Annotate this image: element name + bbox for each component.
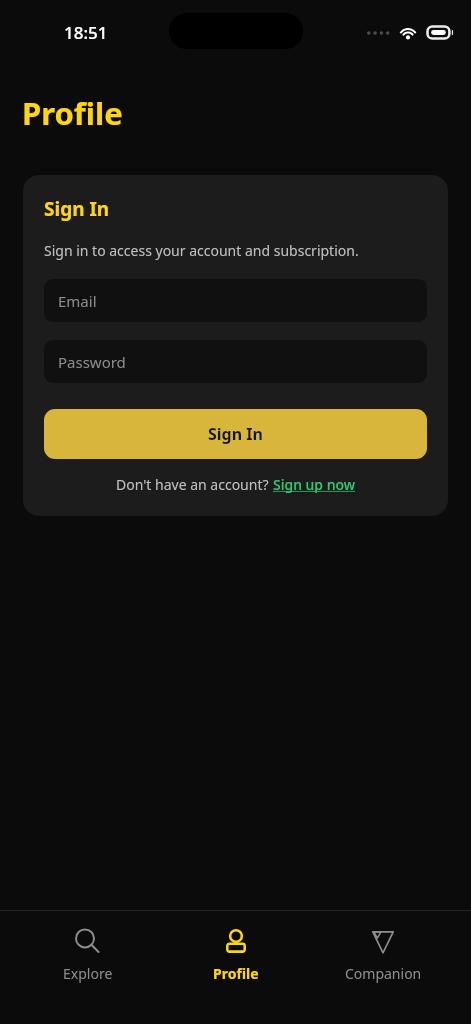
button[interactable]: Sign up now <box>273 475 356 494</box>
staticText: 18:51 <box>64 21 108 44</box>
button[interactable]: Email <box>44 279 427 322</box>
staticText: Sign up now <box>273 475 356 494</box>
staticText: Profile <box>22 92 123 134</box>
staticText: Explore <box>63 964 113 983</box>
staticText: Sign in to access your account and subsc… <box>44 241 359 260</box>
button[interactable]: Companion <box>323 911 443 1024</box>
staticText: Password <box>58 352 126 372</box>
button[interactable]: Sign In <box>44 409 427 459</box>
button[interactable]: Password <box>44 340 427 383</box>
button[interactable]: Profile <box>176 911 296 1024</box>
button[interactable]: Explore <box>28 911 148 1024</box>
staticText: Sign In <box>44 196 110 222</box>
staticText: Don't have an account? <box>116 475 273 494</box>
staticText: Profile <box>213 964 259 983</box>
staticText: Sign In <box>208 423 263 445</box>
staticText: Companion <box>345 964 422 983</box>
staticText: Email <box>58 291 97 311</box>
